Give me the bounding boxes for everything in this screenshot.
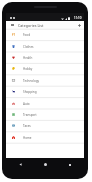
button[interactable]: Add category bbox=[75, 21, 84, 29]
staticText: Transport bbox=[23, 113, 37, 117]
staticText: 11:10 bbox=[74, 16, 82, 20]
button[interactable]: Back bbox=[19, 163, 22, 166]
button[interactable]: Food bbox=[6, 29, 84, 40]
button[interactable]: Health bbox=[6, 52, 84, 63]
staticText: Home bbox=[23, 136, 32, 140]
staticText: Shopping bbox=[23, 90, 37, 94]
staticText: Categories List bbox=[18, 23, 44, 28]
button[interactable]: Hobby bbox=[6, 63, 84, 74]
button[interactable]: Transport bbox=[6, 109, 84, 120]
staticText: Technology bbox=[23, 79, 40, 83]
button[interactable]: Technology bbox=[6, 75, 84, 86]
button[interactable]: Home bbox=[44, 163, 47, 166]
button[interactable]: Clothes bbox=[6, 41, 84, 52]
staticText: Food bbox=[23, 33, 31, 37]
button[interactable]: Auto bbox=[6, 98, 84, 109]
button[interactable]: Home bbox=[6, 132, 84, 143]
button[interactable]: Shopping bbox=[6, 86, 84, 97]
staticText: Hobby bbox=[23, 67, 33, 71]
button[interactable]: Taxes bbox=[6, 120, 84, 131]
staticText: Clothes bbox=[23, 45, 34, 49]
staticText: Taxes bbox=[23, 124, 31, 128]
button[interactable]: Open navigation menu bbox=[6, 21, 18, 29]
button[interactable]: Recents bbox=[69, 164, 71, 166]
staticText: Auto bbox=[23, 102, 30, 106]
staticText: Health bbox=[23, 56, 33, 60]
